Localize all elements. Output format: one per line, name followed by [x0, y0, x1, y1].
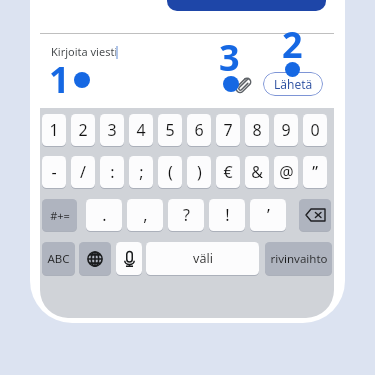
staticText: / — [80, 161, 86, 183]
staticText: 6 — [194, 119, 204, 141]
staticText: 2 — [78, 119, 88, 141]
staticText: 3 — [219, 33, 240, 82]
button[interactable]: 9 — [274, 114, 298, 146]
staticText: #+= — [50, 208, 70, 223]
button[interactable]: - — [42, 156, 66, 188]
button[interactable]: ABC — [42, 242, 75, 275]
staticText: ! — [225, 204, 230, 226]
staticText: rivinvaihto — [270, 251, 328, 267]
button[interactable]: 6 — [187, 114, 211, 146]
button[interactable]: ? — [168, 199, 204, 231]
staticText: 4 — [136, 119, 146, 141]
staticText: @ — [279, 161, 294, 183]
button[interactable]: 7 — [216, 114, 240, 146]
staticText: Lähetä — [274, 76, 313, 92]
button[interactable]: : — [100, 156, 124, 188]
button[interactable]: väli — [146, 242, 259, 275]
staticText: ) — [197, 161, 202, 183]
staticText: Kirjoita viesti — [51, 44, 118, 59]
button[interactable]: . — [86, 199, 122, 231]
staticText: - — [51, 161, 57, 183]
button[interactable] — [79, 242, 111, 275]
staticText: , — [143, 204, 148, 226]
button[interactable]: rivinvaihto — [265, 242, 332, 275]
button[interactable]: 5 — [158, 114, 182, 146]
staticText: 5 — [165, 119, 175, 141]
button[interactable]: , — [127, 199, 163, 231]
staticText: 2 — [282, 20, 303, 69]
button[interactable]: Attach file — [232, 75, 254, 97]
button[interactable]: 0 — [303, 114, 327, 146]
staticText: ’ — [267, 204, 270, 226]
staticText: 1 — [49, 55, 70, 104]
staticText: 3 — [107, 119, 117, 141]
staticText: 1 — [49, 119, 59, 141]
staticText: 8 — [252, 119, 262, 141]
staticText: ABC — [47, 251, 70, 267]
staticText: ? — [183, 204, 190, 226]
button[interactable]: ( — [158, 156, 182, 188]
button[interactable]: 1 — [42, 114, 66, 146]
staticText: € — [223, 161, 233, 183]
staticText: ; — [139, 161, 144, 183]
button[interactable]: Lähetä — [263, 72, 323, 96]
button[interactable] — [167, 0, 326, 11]
button[interactable]: 8 — [245, 114, 269, 146]
staticText: 9 — [281, 119, 291, 141]
button[interactable]: ; — [129, 156, 153, 188]
button[interactable]: #+= — [42, 199, 77, 231]
button[interactable] — [116, 242, 142, 275]
staticText: 7 — [223, 119, 233, 141]
button[interactable]: 2 — [71, 114, 95, 146]
staticText: väli — [193, 250, 213, 267]
staticText: 0 — [310, 119, 320, 141]
button[interactable]: ) — [187, 156, 211, 188]
staticText: & — [251, 161, 263, 183]
button[interactable]: 4 — [129, 114, 153, 146]
button[interactable] — [299, 199, 331, 231]
button[interactable]: 3 — [100, 114, 124, 146]
button[interactable]: / — [71, 156, 95, 188]
staticText: . — [102, 204, 107, 226]
staticText: : — [110, 161, 115, 183]
button[interactable]: @ — [274, 156, 298, 188]
button[interactable]: ’ — [250, 199, 286, 231]
staticText: ” — [312, 161, 318, 183]
button[interactable]: ” — [303, 156, 327, 188]
button[interactable]: ! — [209, 199, 245, 231]
button[interactable]: & — [245, 156, 269, 188]
staticText: ( — [168, 161, 173, 183]
button[interactable]: € — [216, 156, 240, 188]
